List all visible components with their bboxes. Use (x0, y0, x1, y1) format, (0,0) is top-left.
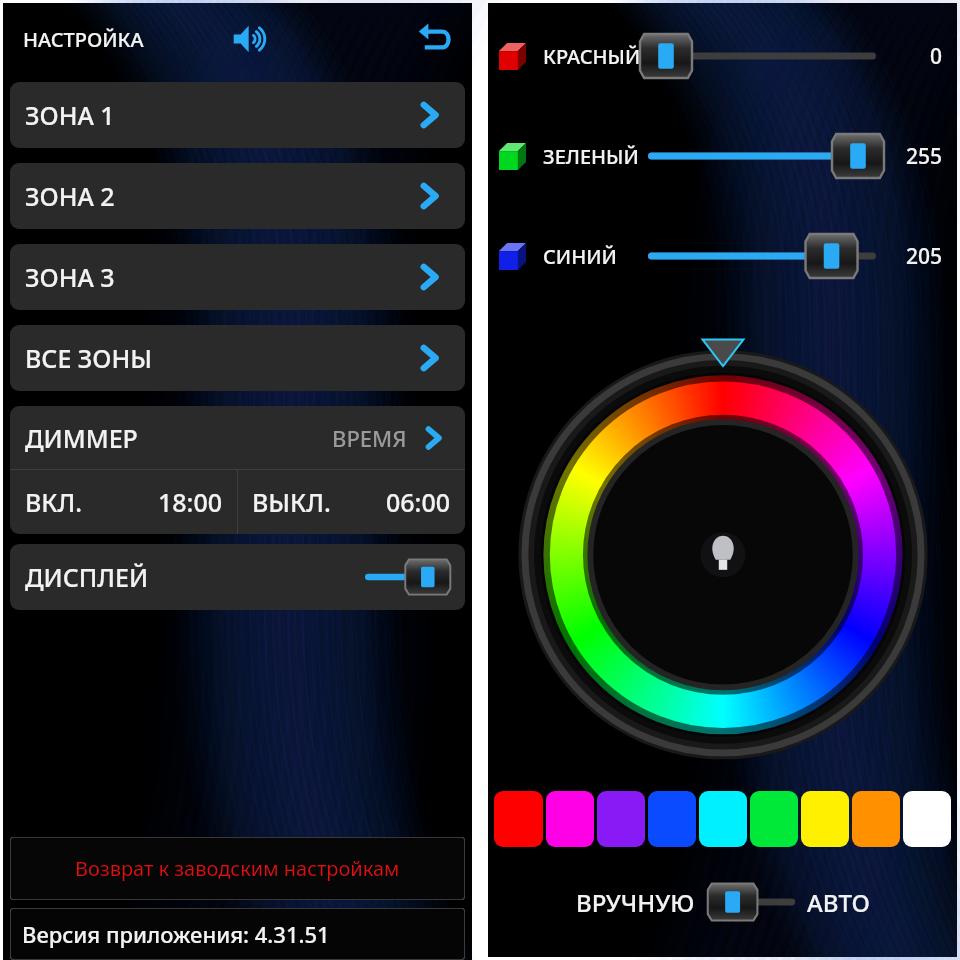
button[interactable]: Manual auto toggle (705, 879, 797, 925)
staticText: НАСТРОЙКА (23, 26, 144, 53)
button[interactable]: Возврат к заводским настройкам (10, 837, 465, 900)
button[interactable]: ВКЛ. (10, 470, 237, 534)
staticText: ВЫКЛ. (252, 485, 331, 519)
staticText: 0 (930, 42, 943, 71)
staticText: ВРУЧНУЮ (576, 886, 695, 919)
button[interactable]: Colour preset (648, 791, 696, 847)
button[interactable]: Colour preset (750, 791, 798, 847)
staticText: СИНИЙ (543, 243, 617, 270)
button[interactable]: ДИММЕР (10, 406, 465, 469)
button[interactable]: ДИСПЛЕЙ (10, 544, 465, 610)
staticText: ДИММЕР (25, 421, 138, 455)
button[interactable]: ВЫКЛ. (238, 470, 465, 534)
button[interactable]: ЗОНА 3 (10, 244, 465, 310)
staticText: ЗОНА 3 (25, 260, 115, 294)
button[interactable]: ЗОНА 1 (10, 82, 465, 148)
staticText: Версия приложения: 4.31.51 (22, 919, 330, 949)
staticText: АВТО (807, 886, 870, 919)
button[interactable]: ВСЕ ЗОНЫ (10, 325, 465, 391)
staticText: ВСЕ ЗОНЫ (25, 341, 153, 375)
button[interactable]: Colour preset (597, 791, 645, 847)
button[interactable]: Colour preset (546, 791, 594, 847)
staticText: 06:00 (386, 485, 451, 519)
staticText: ЗЕЛЕНЫЙ (543, 143, 639, 170)
staticText: ДИСПЛЕЙ (25, 560, 149, 594)
button[interactable]: КРАСНЫЙ (640, 28, 884, 84)
staticText: 18:00 (158, 485, 223, 519)
button[interactable]: Sound (226, 16, 272, 62)
staticText: ЗОНА 1 (25, 98, 115, 132)
button[interactable]: СИНИЙ (640, 228, 884, 284)
staticText: ВРЕМЯ (332, 423, 407, 453)
staticText: 255 (906, 142, 943, 171)
button[interactable]: Colour preset (801, 791, 849, 847)
staticText: 205 (906, 242, 943, 271)
button[interactable]: Colour preset (699, 791, 747, 847)
button[interactable]: ЗЕЛЕНЫЙ (640, 128, 884, 184)
staticText: Возврат к заводским настройкам (75, 855, 400, 882)
button[interactable]: Colour preset (494, 791, 543, 847)
button[interactable]: Colour preset (852, 791, 900, 847)
button[interactable]: Colour wheel (498, 314, 948, 764)
button[interactable]: Back (412, 16, 458, 62)
button[interactable]: ЗОНА 2 (10, 163, 465, 229)
staticText: ЗОНА 2 (25, 179, 115, 213)
button[interactable]: Colour preset (903, 791, 951, 847)
staticText: ВКЛ. (25, 485, 82, 519)
staticText: КРАСНЫЙ (543, 43, 641, 70)
